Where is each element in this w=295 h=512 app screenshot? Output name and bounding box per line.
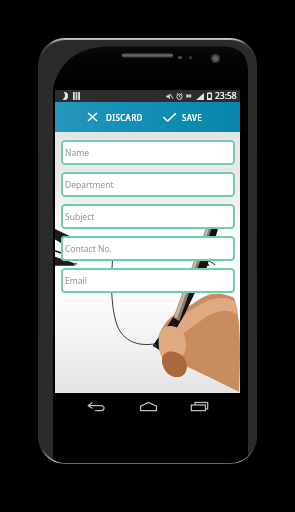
staticText: Name [65, 147, 89, 159]
button[interactable]: Email [61, 268, 235, 293]
button[interactable]: DISCARD [55, 102, 143, 132]
staticText: Department [65, 179, 114, 191]
button[interactable]: Name [61, 140, 235, 165]
staticText: SAVE [182, 112, 203, 123]
button[interactable]: Home [121, 395, 176, 417]
button[interactable]: Back [69, 395, 124, 417]
staticText: Email [65, 275, 87, 287]
staticText: Subject [65, 211, 95, 223]
button[interactable]: SAVE [143, 102, 216, 132]
button[interactable]: Department [61, 172, 235, 197]
staticText: DISCARD [106, 112, 143, 123]
button[interactable]: Subject [61, 204, 235, 229]
button[interactable]: Contact No. [61, 236, 235, 261]
button[interactable]: Recent apps [172, 395, 227, 417]
staticText: Contact No. [65, 243, 112, 255]
staticText: 23:58 [215, 90, 237, 102]
